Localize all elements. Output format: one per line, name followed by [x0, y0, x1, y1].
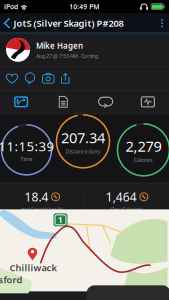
button[interactable]: Details — [42, 90, 84, 114]
button[interactable]: Share — [57, 68, 73, 89]
staticText: sford — [0, 273, 22, 286]
button[interactable]: Map — [0, 90, 42, 114]
staticText: Aug 27 @ 7:53 AM · Cycling — [36, 52, 98, 59]
staticText: 1 — [58, 214, 63, 225]
button[interactable]: Like — [3, 69, 21, 88]
staticText: Elev. Gain (m) — [111, 206, 143, 213]
staticText: iPod — [4, 2, 18, 11]
staticText: Calories — [134, 156, 153, 163]
staticText: Chilliwack — [9, 261, 56, 274]
staticText: 18.4 — [24, 189, 48, 205]
button[interactable]: Charts — [127, 90, 169, 114]
staticText: JotS (Silver Skagit) P#208 — [13, 17, 123, 29]
staticText: Mike Hagen — [36, 40, 83, 51]
staticText: Time — [20, 155, 32, 162]
staticText: Distance (km) — [65, 148, 100, 155]
staticText: 207.34 — [61, 128, 105, 147]
button[interactable]: Back — [0, 14, 13, 32]
button[interactable]: Photos — [39, 68, 57, 89]
staticText: Avg Speed (km/h) — [21, 206, 64, 213]
staticText: 11:15:39 — [0, 137, 54, 155]
button[interactable]: More options — [156, 16, 168, 30]
button[interactable]: Laps — [84, 90, 127, 114]
staticText: 1,464 — [106, 189, 137, 205]
staticText: 2,279 — [125, 136, 161, 156]
staticText: 10:49 PM — [69, 2, 99, 11]
button[interactable]: Comment — [21, 68, 39, 89]
